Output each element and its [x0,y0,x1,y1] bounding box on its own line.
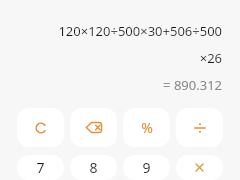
staticText: 120×120÷500×30+506÷500 [58,22,222,40]
button[interactable]: 9 [123,155,170,180]
button[interactable]: 7 [17,155,64,180]
staticText: 9 [142,158,151,177]
staticText: 7 [36,158,45,177]
staticText: % [141,118,153,137]
button[interactable]: Percent [123,108,170,147]
button[interactable]: Divide [176,108,223,147]
staticText: = 890.312 [163,76,222,94]
button[interactable]: 8 [70,155,117,180]
button[interactable]: Backspace [70,108,117,147]
button[interactable]: Clear [17,108,64,147]
staticText: ×26 [199,49,222,67]
button[interactable]: Multiply [176,155,223,180]
staticText: 8 [89,158,98,177]
